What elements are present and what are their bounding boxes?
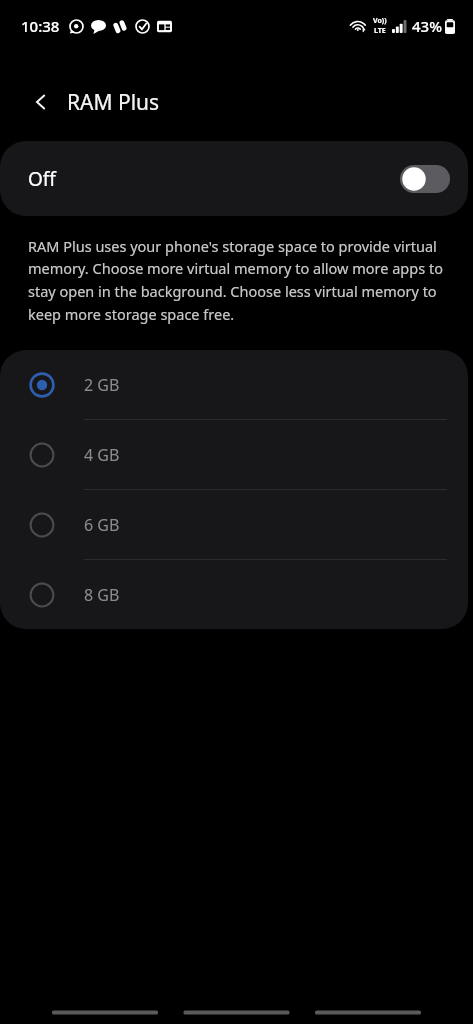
button[interactable]: 2 GB <box>0 350 468 419</box>
button[interactable]: Off <box>0 141 468 216</box>
staticText: Vo)) <box>373 16 387 26</box>
staticText: 43% <box>412 16 442 36</box>
button[interactable]: 4 GB <box>0 420 468 489</box>
staticText: RAM Plus <box>67 88 160 117</box>
staticText: 6 GB <box>84 514 120 536</box>
staticText: 10:38 <box>21 16 60 36</box>
staticText: 8 GB <box>84 584 120 606</box>
staticText: LTE <box>374 26 386 36</box>
button[interactable]: 8 GB <box>0 560 468 629</box>
staticText: Off <box>28 166 56 192</box>
staticText: RAM Plus uses your phone's storage space… <box>28 236 451 324</box>
button[interactable]: Back <box>20 81 62 123</box>
staticText: 4 GB <box>84 444 120 466</box>
staticText: 2 GB <box>84 374 120 396</box>
button[interactable]: 6 GB <box>0 490 468 559</box>
